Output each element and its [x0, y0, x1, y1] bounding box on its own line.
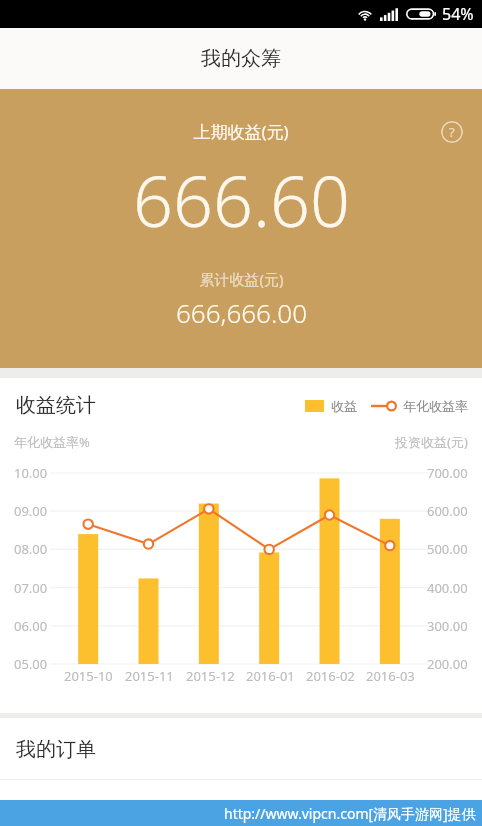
staticText: 2015-12: [186, 667, 235, 685]
staticText: 666,666.00: [176, 295, 307, 330]
staticText: 500.00: [427, 540, 468, 558]
staticText: 收益统计: [16, 393, 96, 418]
staticText: 2015-11: [125, 667, 174, 685]
staticText: http://www.vipcn.com[清风手游网]提供: [224, 804, 476, 823]
staticText: 05.00: [14, 655, 48, 673]
staticText: 400.00: [427, 579, 468, 597]
staticText: 06.00: [14, 617, 48, 635]
staticText: 我的众筹: [201, 46, 281, 71]
staticText: 收益: [331, 398, 357, 414]
staticText: 年化收益率: [403, 398, 468, 414]
staticText: 上期收益(元): [193, 120, 289, 143]
staticText: 09.00: [14, 502, 48, 520]
staticText: 600.00: [427, 502, 468, 520]
staticText: 2015-10: [64, 667, 113, 685]
staticText: 投资收益(元): [395, 433, 468, 451]
staticText: 700.00: [427, 464, 468, 482]
staticText: 2016-02: [306, 667, 355, 685]
staticText: 07.00: [14, 579, 48, 597]
staticText: 2016-03: [366, 667, 415, 685]
staticText: 54%: [442, 3, 474, 25]
staticText: 累计收益(元): [199, 269, 284, 289]
staticText: 666.60: [133, 152, 350, 247]
staticText: 我的订单: [16, 737, 96, 762]
button[interactable]: 我的订单: [0, 718, 482, 780]
staticText: 300.00: [427, 617, 468, 635]
staticText: ?: [449, 123, 455, 141]
staticText: 10.00: [14, 464, 48, 482]
staticText: 年化收益率%: [14, 433, 90, 451]
staticText: 200.00: [427, 655, 468, 673]
button[interactable]: Help: [441, 121, 463, 143]
staticText: 2016-01: [246, 667, 295, 685]
staticText: 08.00: [14, 540, 48, 558]
